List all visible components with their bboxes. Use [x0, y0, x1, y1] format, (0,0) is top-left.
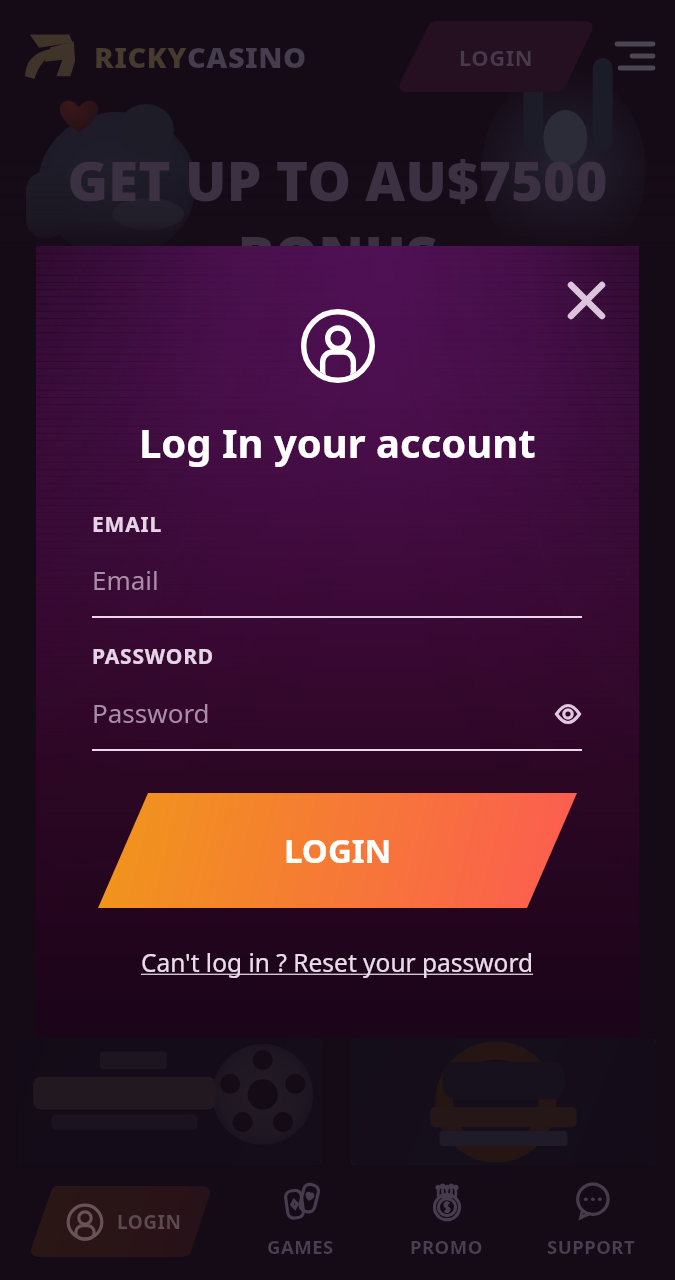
staticText: SUPPORT [547, 1234, 636, 1259]
staticText: BONUS [237, 217, 438, 292]
staticText: GET UP TO AU$7500 [67, 142, 608, 217]
staticText: Can't log in ? Reset your password [141, 946, 534, 979]
button[interactable]: PROMO [378, 1165, 515, 1275]
staticText: PROMO [410, 1234, 483, 1259]
button[interactable]: LOGIN [27, 1186, 214, 1257]
staticText: EMAIL [92, 510, 163, 539]
staticText: Password [92, 695, 546, 730]
staticText: CASINO [187, 37, 307, 76]
button[interactable]: LOGIN [98, 793, 577, 908]
staticText: LOGIN [117, 1209, 182, 1235]
button[interactable]: Show password [550, 696, 586, 732]
staticText: PASSWORD [92, 642, 214, 671]
button[interactable] [18, 1039, 322, 1165]
staticText: Email [92, 562, 159, 597]
button[interactable] [351, 1039, 656, 1165]
button[interactable]: SUPPORT [523, 1165, 660, 1275]
button[interactable]: GAMES [232, 1165, 369, 1275]
staticText: Log In your account [139, 415, 536, 469]
button[interactable]: Close [559, 273, 614, 328]
button[interactable]: LOGIN [395, 21, 597, 92]
staticText: LOGIN [459, 42, 534, 72]
button[interactable]: Menu [611, 34, 659, 82]
staticText: GAMES [267, 1234, 334, 1259]
staticText: RICKY [94, 37, 187, 76]
button[interactable]: Can't log in ? Reset your password [141, 946, 534, 979]
staticText: LOGIN [284, 828, 392, 873]
